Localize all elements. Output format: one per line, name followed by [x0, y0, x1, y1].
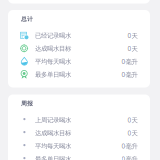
button[interactable]: 最多单日喝水 [8, 68, 150, 81]
button[interactable]: 达成喝水目标 [8, 126, 150, 139]
staticText: 达成喝水目标 [35, 129, 71, 137]
staticText: 0天 [127, 44, 137, 53]
staticText: 0毫升 [121, 155, 137, 160]
staticText: 0天 [127, 129, 137, 137]
staticText: 平均每天喝水 [35, 57, 71, 66]
staticText: 平均每天喝水 [35, 142, 71, 150]
staticText: 0毫升 [121, 57, 137, 66]
staticText: 0毫升 [121, 70, 137, 79]
staticText: 0毫升 [121, 142, 137, 150]
staticText: 0天 [127, 116, 137, 124]
button[interactable]: 上周记录喝水 [8, 113, 150, 126]
button[interactable]: 平均每天喝水 [8, 55, 150, 68]
button[interactable]: 平均每天喝水 [8, 139, 150, 152]
staticText: 达成喝水目标 [35, 44, 71, 53]
staticText: 0天 [127, 31, 137, 40]
staticText: 最多单日喝水 [35, 155, 71, 160]
button[interactable]: 最多单日喝水 [8, 152, 150, 160]
button[interactable]: 达成喝水目标 [8, 42, 150, 55]
staticText: 上周记录喝水 [35, 116, 71, 124]
staticText: 最多单日喝水 [35, 70, 71, 79]
staticText: 总计 [21, 15, 33, 23]
staticText: 已经记录喝水 [35, 31, 71, 40]
staticText: 周报 [21, 100, 33, 107]
button[interactable]: 已经记录喝水 [8, 29, 150, 42]
